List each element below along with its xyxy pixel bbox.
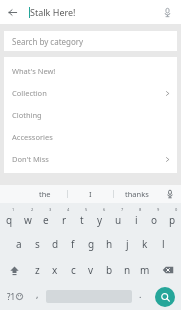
staticText: g — [88, 237, 95, 251]
button[interactable]: k — [136, 231, 154, 257]
button[interactable]: l — [154, 231, 172, 257]
staticText: h — [106, 237, 113, 251]
button[interactable]: 1 — [0, 205, 19, 231]
button[interactable]: 2 — [19, 205, 37, 231]
staticText: Don't Miss — [12, 154, 49, 164]
button[interactable]: x — [46, 257, 64, 283]
staticText: t — [80, 213, 84, 227]
staticText: k — [142, 237, 148, 251]
staticText: 0 — [175, 207, 178, 212]
staticText: j — [126, 237, 129, 251]
staticText: 7 — [121, 207, 124, 212]
staticText: 5 — [85, 207, 88, 212]
staticText: 2 — [31, 207, 34, 212]
staticText: m — [140, 263, 150, 277]
staticText: ?1 — [7, 291, 16, 302]
button[interactable]: the — [22, 189, 67, 199]
staticText: Clothing — [12, 110, 42, 120]
button[interactable]: , — [29, 283, 46, 310]
button[interactable]: d — [46, 231, 64, 257]
staticText: w — [24, 213, 32, 227]
staticText: 6 — [103, 207, 106, 212]
button[interactable]: a — [10, 231, 28, 257]
staticText: o — [151, 213, 158, 227]
button[interactable]: Voice input — [163, 187, 177, 201]
button[interactable]: What's New! — [4, 60, 177, 82]
button[interactable]: n — [118, 257, 136, 283]
staticText: q — [6, 213, 13, 227]
button[interactable]: m — [136, 257, 154, 283]
button[interactable]: z — [28, 257, 46, 283]
button[interactable]: Don't Miss — [4, 148, 177, 170]
staticText: What's New! — [12, 66, 56, 76]
button[interactable]: v — [82, 257, 100, 283]
button[interactable]: Back — [3, 3, 21, 21]
button[interactable]: . — [132, 283, 149, 310]
staticText: y — [97, 213, 103, 227]
staticText: 1 — [12, 207, 15, 212]
button[interactable]: 7 — [109, 205, 127, 231]
staticText: 3 — [49, 207, 52, 212]
staticText: Collection — [12, 88, 47, 98]
staticText: I — [89, 189, 92, 199]
button[interactable]: 6 — [91, 205, 109, 231]
staticText: Search by category — [12, 36, 84, 47]
staticText: p — [169, 213, 176, 227]
staticText: r — [62, 213, 67, 227]
staticText: e — [43, 213, 49, 227]
staticText: f — [71, 237, 75, 251]
staticText: v — [88, 263, 94, 277]
button[interactable]: Shift — [0, 257, 28, 283]
button[interactable]: c — [64, 257, 82, 283]
button[interactable]: ?1 — [0, 283, 29, 310]
staticText: c — [71, 263, 76, 277]
button[interactable]: Clothing — [4, 104, 177, 126]
button[interactable]: Search by category — [4, 31, 177, 51]
staticText: u — [115, 213, 122, 227]
button[interactable]: thanks — [114, 189, 159, 199]
button[interactable]: g — [82, 231, 100, 257]
button[interactable]: 3 — [37, 205, 55, 231]
staticText: , — [36, 288, 39, 300]
staticText: 4 — [67, 207, 70, 212]
button[interactable]: 9 — [145, 205, 163, 231]
button[interactable]: I — [68, 189, 113, 199]
staticText: the — [39, 189, 51, 199]
staticText: a — [16, 237, 22, 251]
staticText: z — [35, 263, 40, 277]
button[interactable]: Voice search — [158, 3, 176, 21]
button[interactable]: h — [100, 231, 118, 257]
button[interactable]: j — [118, 231, 136, 257]
button[interactable]: 8 — [127, 205, 145, 231]
staticText: x — [52, 263, 58, 277]
button[interactable]: 4 — [55, 205, 73, 231]
staticText: . — [139, 288, 142, 300]
button[interactable]: f — [64, 231, 82, 257]
button[interactable]: Collection — [4, 82, 177, 104]
staticText: 9 — [157, 207, 160, 212]
staticText: 8 — [139, 207, 142, 212]
staticText: b — [106, 263, 113, 277]
staticText: Stalk Here! — [30, 6, 76, 18]
button[interactable]: Accessories — [4, 126, 177, 148]
button[interactable]: Search — [149, 283, 181, 310]
button[interactable]: 0 — [163, 205, 181, 231]
button[interactable]: s — [28, 231, 46, 257]
button[interactable]: Backspace — [154, 257, 181, 283]
staticText: l — [162, 237, 165, 251]
staticText: Accessories — [12, 132, 53, 142]
staticText: d — [52, 237, 59, 251]
staticText: i — [135, 213, 138, 227]
staticText: s — [35, 237, 40, 251]
staticText: n — [124, 263, 131, 277]
staticText: thanks — [125, 189, 149, 199]
button[interactable]: b — [100, 257, 118, 283]
button[interactable]: 5 — [73, 205, 91, 231]
